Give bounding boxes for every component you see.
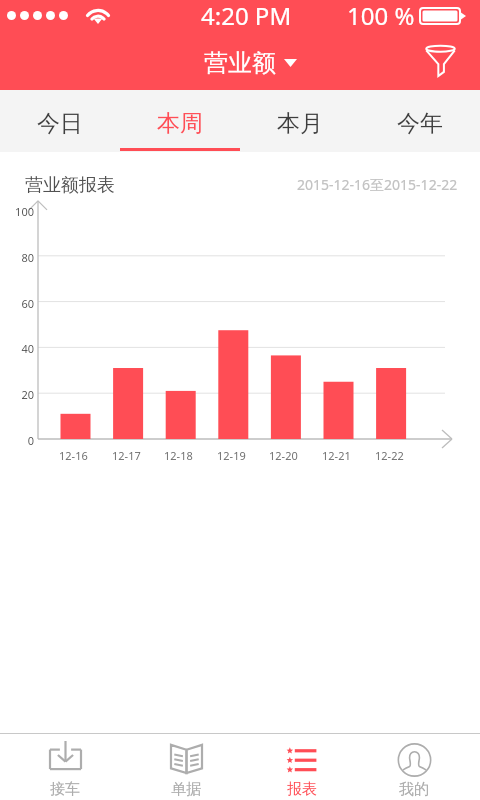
button[interactable]: 本周 (120, 90, 240, 152)
staticText: 60 (21, 296, 34, 311)
button[interactable]: 接车 (5, 734, 125, 800)
button[interactable]: 营业额 (198, 44, 303, 82)
staticText: 100 (15, 204, 34, 219)
staticText: 12-20 (269, 448, 298, 463)
staticText: 100 % (347, 0, 415, 29)
staticText: 80 (21, 250, 34, 265)
staticText: 20 (21, 387, 34, 402)
staticText: 接车 (50, 780, 80, 799)
button[interactable]: 单据 (126, 734, 246, 800)
staticText: 营业额报表 (25, 174, 115, 197)
staticText: 12-21 (322, 448, 351, 463)
staticText: 12-16 (59, 448, 88, 463)
staticText: 0 (27, 433, 34, 448)
staticText: 今日 (37, 109, 83, 138)
staticText: 报表 (287, 780, 317, 799)
staticText: 本周 (157, 109, 203, 138)
button[interactable]: 报表 (242, 734, 362, 800)
button[interactable]: 本月 (240, 90, 360, 152)
staticText: 今年 (397, 109, 443, 138)
staticText: 12-18 (164, 448, 193, 463)
button[interactable]: Filter (410, 31, 470, 91)
staticText: 12-19 (217, 448, 246, 463)
staticText: 12-17 (112, 448, 141, 463)
staticText: 4:20 PM (201, 0, 292, 29)
button[interactable]: 今日 (0, 90, 120, 152)
staticText: 营业额 (204, 48, 276, 78)
staticText: 单据 (171, 780, 201, 799)
button[interactable]: 我的 (354, 734, 474, 800)
staticText: 本月 (277, 109, 323, 138)
staticText: 12-22 (375, 448, 404, 463)
staticText: 我的 (399, 780, 429, 799)
staticText: 2015-12-16至2015-12-22 (297, 175, 458, 194)
staticText: 40 (21, 341, 34, 356)
button[interactable]: 今年 (360, 90, 480, 152)
